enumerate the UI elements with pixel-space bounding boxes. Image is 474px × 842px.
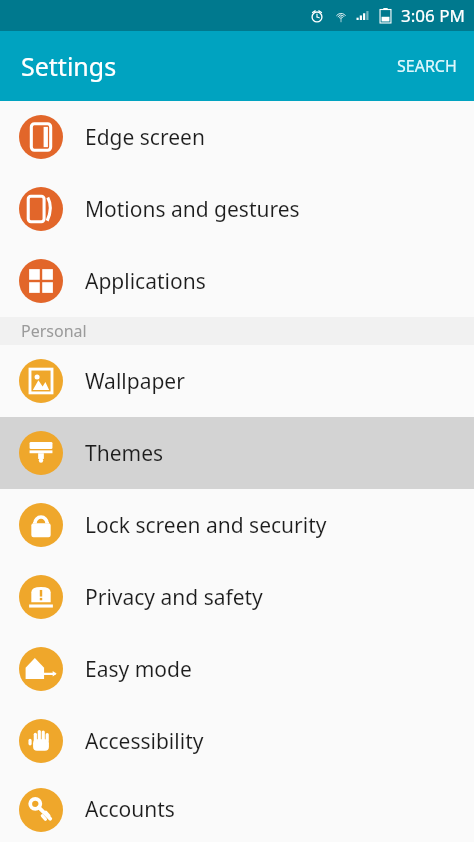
button[interactable]: Edge screen bbox=[0, 101, 474, 173]
button[interactable]: Easy mode bbox=[0, 633, 474, 705]
button[interactable]: Themes bbox=[0, 417, 474, 489]
staticText: Easy mode bbox=[85, 655, 192, 684]
staticText: Edge screen bbox=[85, 123, 205, 152]
button[interactable]: Wallpaper bbox=[0, 345, 474, 417]
staticText: Accounts bbox=[85, 795, 175, 824]
staticText: Accessibility bbox=[85, 727, 204, 756]
staticText: Privacy and safety bbox=[85, 583, 263, 612]
button[interactable]: Accounts bbox=[0, 777, 474, 842]
button[interactable]: Applications bbox=[0, 245, 474, 317]
staticText: Settings bbox=[21, 49, 117, 83]
staticText: SEARCH bbox=[397, 55, 457, 77]
button[interactable]: Lock screen and security bbox=[0, 489, 474, 561]
button[interactable]: SEARCH bbox=[380, 40, 474, 92]
staticText: Wallpaper bbox=[85, 367, 185, 396]
staticText: Lock screen and security bbox=[85, 511, 327, 540]
staticText: Personal bbox=[21, 320, 87, 342]
staticText: 3:06 PM bbox=[401, 4, 465, 27]
button[interactable]: Motions and gestures bbox=[0, 173, 474, 245]
staticText: Motions and gestures bbox=[85, 195, 300, 224]
button[interactable]: Privacy and safety bbox=[0, 561, 474, 633]
button[interactable]: Accessibility bbox=[0, 705, 474, 777]
staticText: Applications bbox=[85, 267, 206, 296]
staticText: Themes bbox=[85, 439, 164, 468]
